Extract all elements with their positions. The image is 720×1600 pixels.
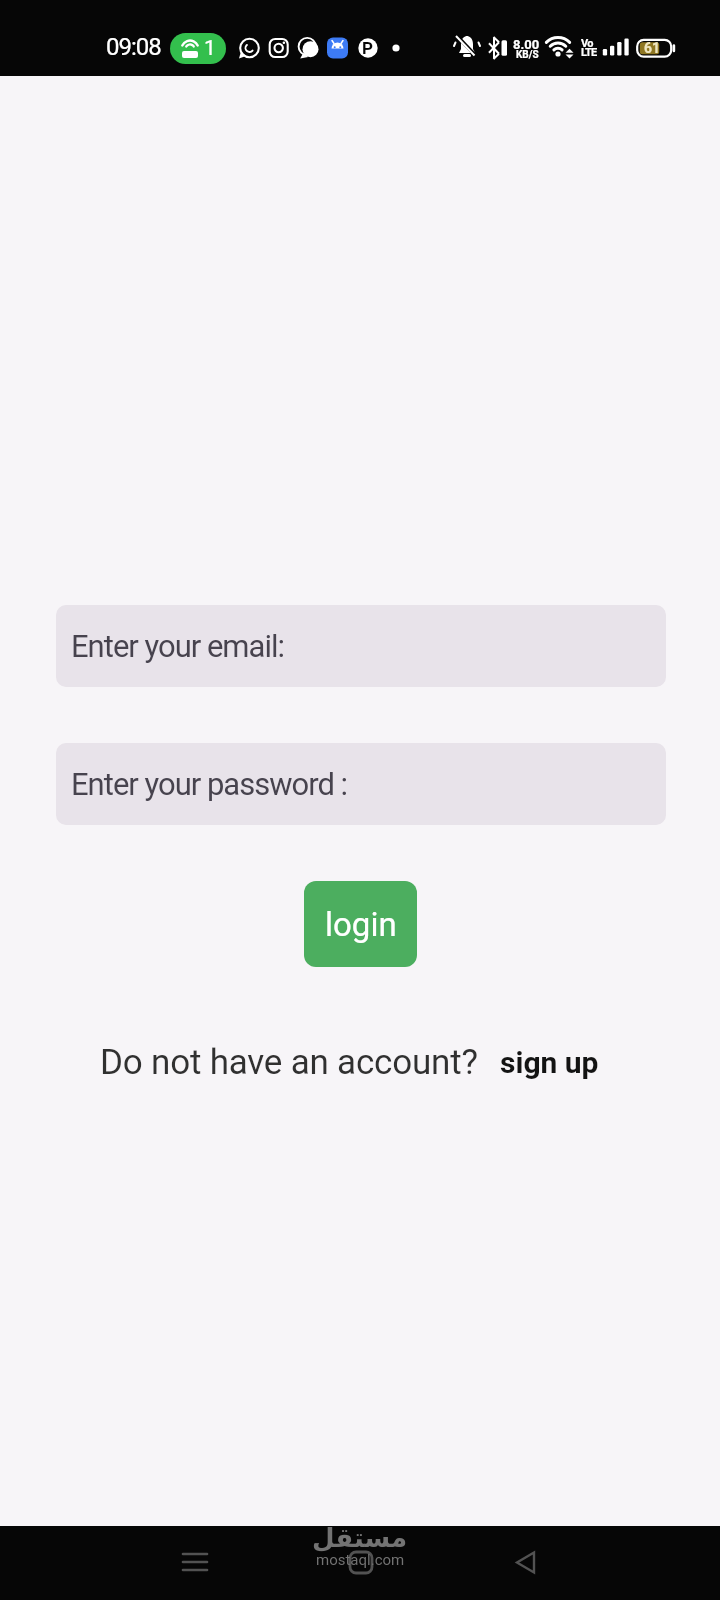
button[interactable] <box>336 1540 386 1586</box>
staticText: Enter your email: <box>71 628 284 664</box>
staticText: Enter your password : <box>71 766 348 802</box>
staticText: mostaql.com <box>316 1551 405 1569</box>
staticText: 09:08 <box>106 33 161 61</box>
staticText: P <box>362 38 373 58</box>
button[interactable] <box>170 1540 220 1586</box>
button[interactable]: Enter your password : <box>56 743 666 825</box>
staticText: login <box>325 905 397 944</box>
button[interactable]: login <box>304 881 417 967</box>
staticText: Do not have an account? <box>100 1042 478 1083</box>
staticText: 1 <box>204 36 216 61</box>
button[interactable] <box>503 1540 553 1586</box>
staticText: sign up <box>500 1045 599 1080</box>
button[interactable]: sign up <box>500 1045 599 1080</box>
staticText: KB/S <box>516 49 539 61</box>
staticText: 61 <box>644 40 661 56</box>
button[interactable]: Enter your email: <box>56 605 666 687</box>
staticText: LTE <box>581 46 597 59</box>
staticText: Vo <box>581 37 593 50</box>
staticText: مستقل <box>312 1523 408 1553</box>
staticText: 8.00 <box>513 37 540 52</box>
